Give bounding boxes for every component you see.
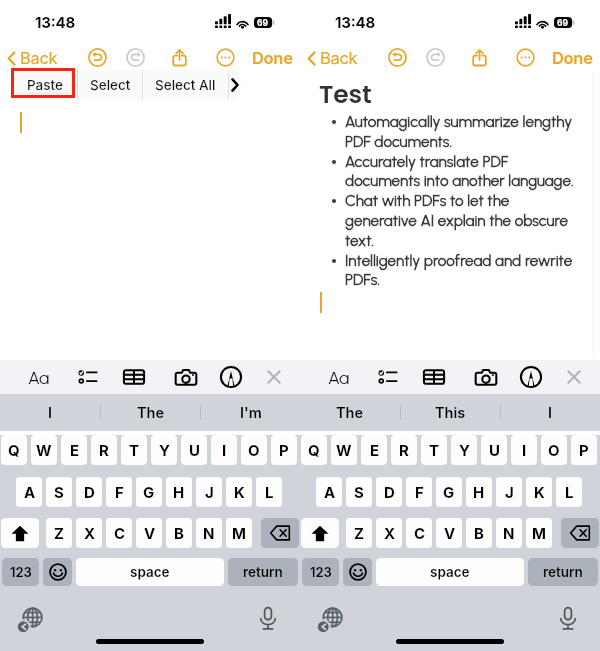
button[interactable]: M	[226, 518, 252, 548]
button[interactable]: C	[106, 518, 132, 548]
button[interactable]: S	[346, 477, 372, 507]
button[interactable]: Text format	[25, 365, 53, 389]
button[interactable]: Camera	[474, 365, 498, 389]
button[interactable]: E	[61, 435, 87, 465]
button[interactable]: D	[76, 477, 102, 507]
button[interactable]: Undo	[388, 48, 407, 67]
button[interactable]: Checklist	[76, 365, 100, 389]
button[interactable]: Q	[301, 435, 327, 465]
button[interactable]: U	[181, 435, 207, 465]
button[interactable]: X	[376, 518, 402, 548]
button[interactable]: A	[316, 477, 342, 507]
button[interactable]: Share	[470, 48, 489, 67]
button[interactable]: I	[0, 394, 100, 431]
button[interactable]: Language	[17, 607, 43, 633]
button[interactable]: return	[528, 558, 598, 586]
button[interactable]: K	[226, 477, 252, 507]
button[interactable]: L	[256, 477, 282, 507]
button[interactable]: Dictate	[258, 605, 278, 631]
button[interactable]: Table	[422, 365, 446, 389]
button[interactable]: O	[541, 435, 567, 465]
button[interactable]: More	[516, 48, 535, 67]
button[interactable]: U	[481, 435, 507, 465]
button[interactable]: Shift	[1, 518, 39, 548]
button[interactable]: Z	[346, 518, 372, 548]
button[interactable]: 123	[302, 558, 339, 586]
button[interactable]: D	[376, 477, 402, 507]
button[interactable]: R	[91, 435, 117, 465]
button[interactable]: L	[556, 477, 582, 507]
button[interactable]: Text format	[325, 365, 353, 389]
button[interactable]: N	[496, 518, 522, 548]
button[interactable]: V	[136, 518, 162, 548]
button[interactable]: V	[436, 518, 462, 548]
button[interactable]: G	[136, 477, 162, 507]
button[interactable]: Markup	[519, 365, 543, 389]
button[interactable]: The	[101, 394, 200, 431]
button[interactable]: return	[228, 558, 298, 586]
button[interactable]: space	[376, 558, 524, 586]
button[interactable]: Redo	[126, 48, 145, 67]
button[interactable]: M	[526, 518, 552, 548]
button[interactable]: Close keyboard	[562, 365, 586, 389]
button[interactable]: Checklist	[376, 365, 400, 389]
button[interactable]: P	[571, 435, 597, 465]
button[interactable]: Dictate	[558, 605, 578, 631]
button[interactable]: Redo	[426, 48, 445, 67]
button[interactable]: Q	[1, 435, 27, 465]
button[interactable]: J	[496, 477, 522, 507]
button[interactable]: Select	[78, 70, 142, 100]
button[interactable]: Back	[4, 44, 61, 72]
button[interactable]: H	[466, 477, 492, 507]
button[interactable]: W	[331, 435, 357, 465]
button[interactable]: Backspace	[261, 518, 299, 548]
button[interactable]: This	[401, 394, 500, 431]
button[interactable]: I	[211, 435, 237, 465]
button[interactable]: Markup	[219, 365, 243, 389]
button[interactable]: P	[271, 435, 297, 465]
button[interactable]: N	[196, 518, 222, 548]
button[interactable]: F	[406, 477, 432, 507]
button[interactable]: I	[501, 394, 600, 431]
button[interactable]: K	[526, 477, 552, 507]
button[interactable]: T	[421, 435, 447, 465]
button[interactable]: Select All	[143, 70, 228, 100]
button[interactable]: Done	[549, 44, 596, 72]
button[interactable]: More options	[229, 70, 241, 100]
button[interactable]: More	[216, 48, 235, 67]
button[interactable]: Close keyboard	[262, 365, 286, 389]
button[interactable]: I'm	[201, 394, 300, 431]
button[interactable]: Z	[46, 518, 72, 548]
button[interactable]: Camera	[174, 365, 198, 389]
button[interactable]: Backspace	[561, 518, 599, 548]
button[interactable]: X	[76, 518, 102, 548]
button[interactable]: I	[511, 435, 537, 465]
button[interactable]: B	[166, 518, 192, 548]
button[interactable]: R	[391, 435, 417, 465]
button[interactable]: A	[16, 477, 42, 507]
button[interactable]: 123	[2, 558, 39, 586]
button[interactable]: Paste	[12, 70, 77, 100]
button[interactable]: Undo	[88, 48, 107, 67]
button[interactable]: O	[241, 435, 267, 465]
button[interactable]: T	[121, 435, 147, 465]
button[interactable]: Table	[122, 365, 146, 389]
button[interactable]: B	[466, 518, 492, 548]
button[interactable]: Emoji	[343, 558, 372, 586]
button[interactable]: Y	[151, 435, 177, 465]
button[interactable]: Back	[304, 44, 361, 72]
button[interactable]: Shift	[301, 518, 339, 548]
button[interactable]: J	[196, 477, 222, 507]
button[interactable]: G	[436, 477, 462, 507]
button[interactable]: W	[31, 435, 57, 465]
button[interactable]: H	[166, 477, 192, 507]
button[interactable]: C	[406, 518, 432, 548]
button[interactable]: S	[46, 477, 72, 507]
button[interactable]: Language	[317, 607, 343, 633]
button[interactable]: Y	[451, 435, 477, 465]
button[interactable]: space	[76, 558, 224, 586]
button[interactable]: Emoji	[43, 558, 72, 586]
button[interactable]: Share	[170, 48, 189, 67]
button[interactable]: E	[361, 435, 387, 465]
button[interactable]: Done	[249, 44, 296, 72]
